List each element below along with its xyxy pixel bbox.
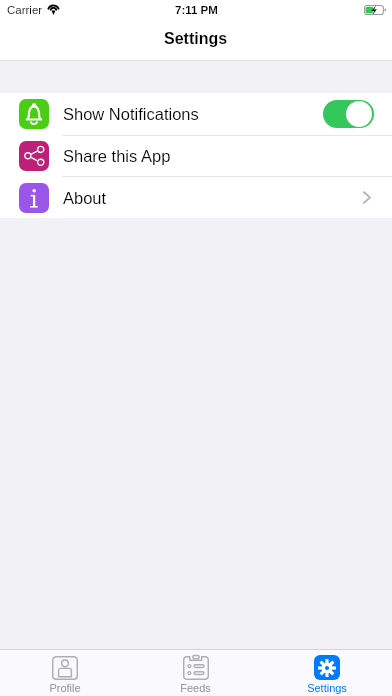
button[interactable]: Profile [0,649,130,696]
staticText: Settings [164,30,228,48]
button[interactable]: Settings [261,649,392,696]
button[interactable]: Share this App [0,135,392,177]
staticText: Profile [49,682,81,694]
staticText: 7:11 PM [175,4,218,17]
button[interactable]: Show Notifications toggle [323,100,374,128]
staticText: About [63,189,107,207]
button[interactable]: About [0,177,392,218]
button[interactable]: Show Notifications [0,93,392,135]
staticText: Feeds [180,682,211,694]
other: Open About [363,191,371,204]
staticText: Share this App [63,147,171,165]
staticText: Carrier [7,4,43,17]
staticText: Settings [307,682,347,694]
button[interactable]: Feeds [130,649,261,696]
staticText: Show Notifications [63,105,199,123]
